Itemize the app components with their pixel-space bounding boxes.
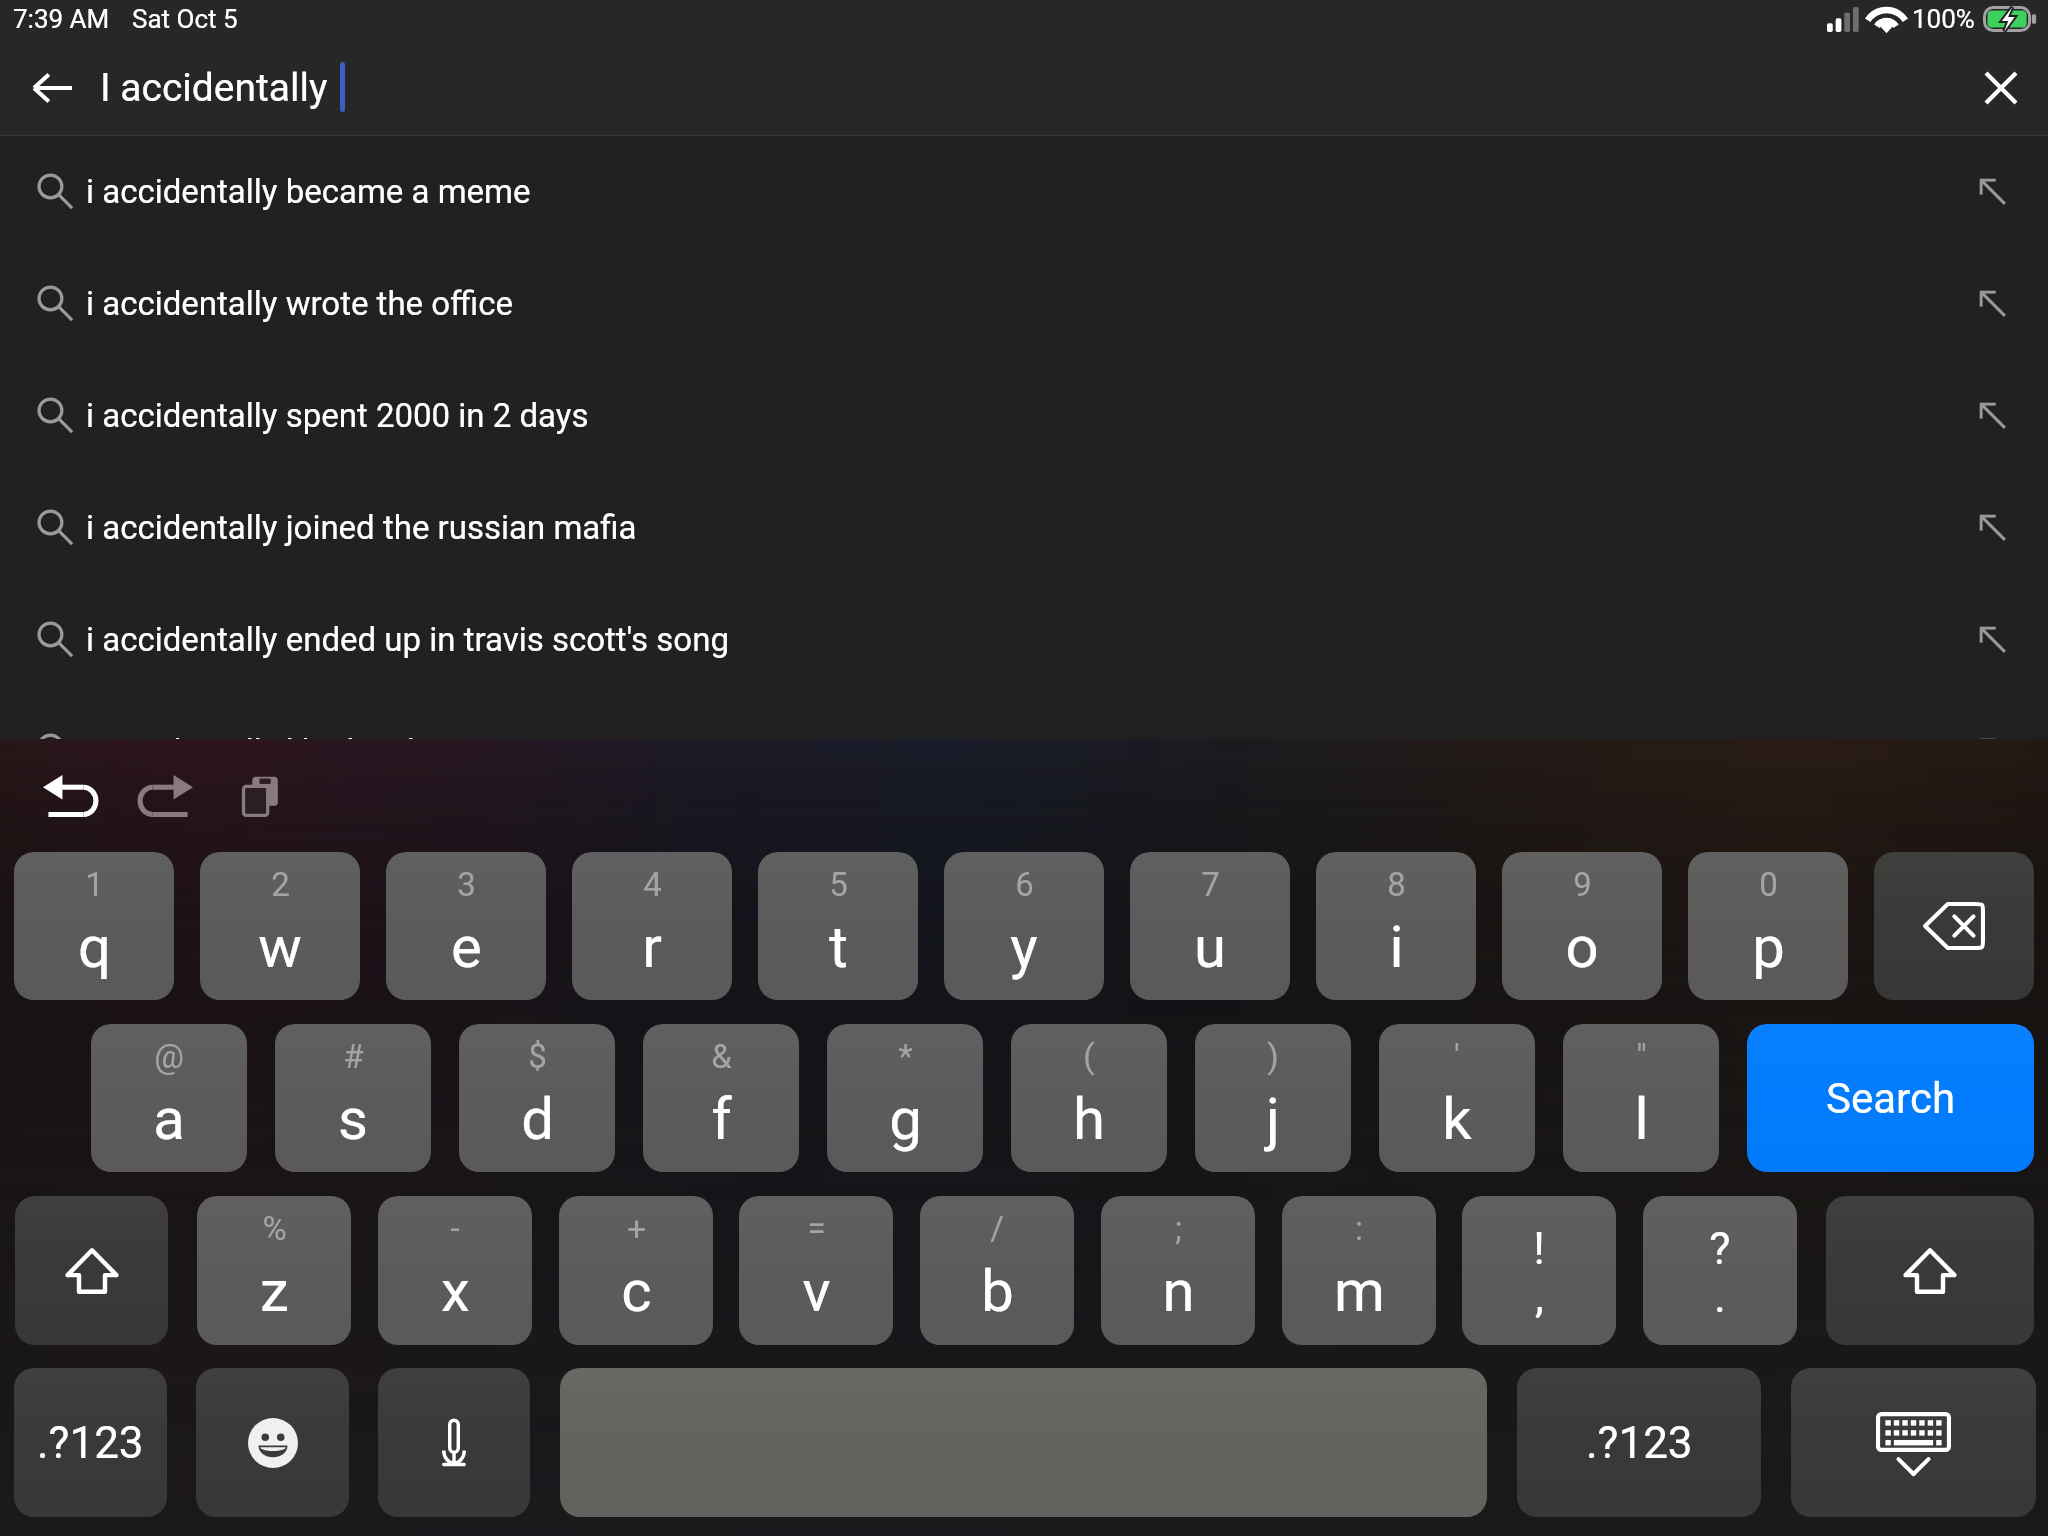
button[interactable]: 0 [1688, 852, 1848, 1000]
staticText: Sat Oct 5 [132, 4, 238, 34]
staticText: 3 [457, 865, 476, 904]
staticText: ' [1454, 1037, 1460, 1076]
button[interactable]: Voice input [378, 1368, 530, 1517]
staticText: .?123 [37, 1417, 144, 1469]
button[interactable]: = [739, 1196, 893, 1345]
button[interactable]: 7 [1130, 852, 1290, 1000]
button[interactable]: ) [1195, 1024, 1351, 1172]
staticText: x [441, 1257, 470, 1325]
staticText: 100% [1912, 4, 1975, 34]
button[interactable]: i accidentally joined the russian mafia [0, 471, 2048, 583]
staticText: " [1636, 1037, 1647, 1076]
staticText: : [1355, 1209, 1363, 1248]
button[interactable]: $ [459, 1024, 615, 1172]
staticText: i accidentally spent 2000 in 2 days [86, 396, 589, 435]
button[interactable]: * [827, 1024, 983, 1172]
staticText: . [1714, 1270, 1726, 1323]
button[interactable]: ! [1462, 1196, 1616, 1345]
button[interactable]: ? [1643, 1196, 1797, 1345]
staticText: 8 [1387, 865, 1406, 904]
staticText: @ [154, 1037, 184, 1076]
staticText: i accidentally liked a photo [86, 732, 474, 771]
staticText: r [642, 913, 662, 981]
staticText: j [1266, 1085, 1280, 1153]
button[interactable]: i accidentally spent 2000 in 2 days [0, 359, 2048, 471]
staticText: d [521, 1085, 554, 1153]
staticText: k [1442, 1085, 1472, 1153]
button[interactable]: i accidentally liked a photo [0, 695, 2048, 807]
staticText: m [1334, 1257, 1385, 1325]
button[interactable]: ' [1379, 1024, 1535, 1172]
staticText: 2 [271, 865, 290, 904]
staticText: 4 [643, 865, 662, 904]
staticText: a [153, 1085, 185, 1153]
staticText: i accidentally ended up in travis scott'… [86, 620, 729, 659]
staticText: n [1162, 1257, 1195, 1325]
button[interactable]: Shift [1826, 1196, 2034, 1345]
staticText: ? [1709, 1222, 1731, 1275]
staticText: 9 [1573, 865, 1592, 904]
button[interactable]: % [197, 1196, 351, 1345]
button[interactable]: i accidentally became a meme [0, 135, 2048, 247]
staticText: v [802, 1257, 831, 1325]
staticText: # [343, 1037, 364, 1076]
button[interactable]: 1 [14, 852, 174, 1000]
button[interactable]: Redo [136, 766, 196, 826]
staticText: * [898, 1037, 913, 1076]
button[interactable]: Hide keyboard [1791, 1368, 2036, 1517]
button[interactable]: @ [91, 1024, 247, 1172]
staticText: ; [1175, 1209, 1182, 1248]
button[interactable]: Space [560, 1368, 1487, 1517]
button[interactable]: & [643, 1024, 799, 1172]
button[interactable]: / [920, 1196, 1074, 1345]
button[interactable]: Backspace [1874, 852, 2034, 1000]
button[interactable]: Emoji [196, 1368, 349, 1517]
button[interactable]: Shift [15, 1196, 168, 1345]
button[interactable]: .?123 [14, 1368, 167, 1517]
staticText: i accidentally joined the russian mafia [86, 508, 637, 547]
staticText: % [262, 1209, 287, 1248]
staticText: b [981, 1257, 1014, 1325]
button[interactable]: Undo [40, 766, 100, 826]
button[interactable]: 8 [1316, 852, 1476, 1000]
button[interactable]: ( [1011, 1024, 1167, 1172]
button[interactable]: 5 [758, 852, 918, 1000]
button[interactable]: 3 [386, 852, 546, 1000]
button[interactable]: " [1563, 1024, 1719, 1172]
staticText: 5 [829, 865, 848, 904]
button[interactable]: + [559, 1196, 713, 1345]
button[interactable]: i accidentally wrote the office [0, 247, 2048, 359]
staticText: q [78, 913, 111, 981]
staticText: h [1073, 1085, 1105, 1153]
staticText: y [1010, 913, 1038, 981]
staticText: l [1634, 1085, 1649, 1153]
button[interactable]: Back [28, 64, 76, 112]
button[interactable]: 4 [572, 852, 732, 1000]
staticText: 7 [1201, 865, 1220, 904]
staticText: .?123 [1586, 1417, 1693, 1469]
staticText: I accidentally [100, 65, 328, 111]
button[interactable]: 6 [944, 852, 1104, 1000]
staticText: = [807, 1209, 826, 1248]
button[interactable]: 9 [1502, 852, 1662, 1000]
button[interactable]: i accidentally ended up in travis scott'… [0, 583, 2048, 695]
button[interactable]: - [378, 1196, 532, 1345]
button[interactable]: : [1282, 1196, 1436, 1345]
button[interactable]: 2 [200, 852, 360, 1000]
button[interactable]: Search [1747, 1024, 2034, 1172]
staticText: Search [1826, 1074, 1956, 1123]
button[interactable]: Clipboard [232, 766, 292, 826]
staticText: e [451, 913, 482, 981]
button[interactable]: .?123 [1517, 1368, 1761, 1517]
button[interactable]: # [275, 1024, 431, 1172]
staticText: & [711, 1037, 732, 1076]
staticText: $ [528, 1037, 547, 1076]
staticText: t [829, 913, 848, 981]
button[interactable]: ; [1101, 1196, 1255, 1345]
staticText: , [1535, 1270, 1544, 1323]
staticText: p [1752, 913, 1785, 981]
staticText: ! [1533, 1222, 1545, 1275]
button[interactable]: Clear [1976, 63, 2026, 113]
staticText: o [1565, 913, 1599, 981]
staticText: / [990, 1209, 1004, 1248]
